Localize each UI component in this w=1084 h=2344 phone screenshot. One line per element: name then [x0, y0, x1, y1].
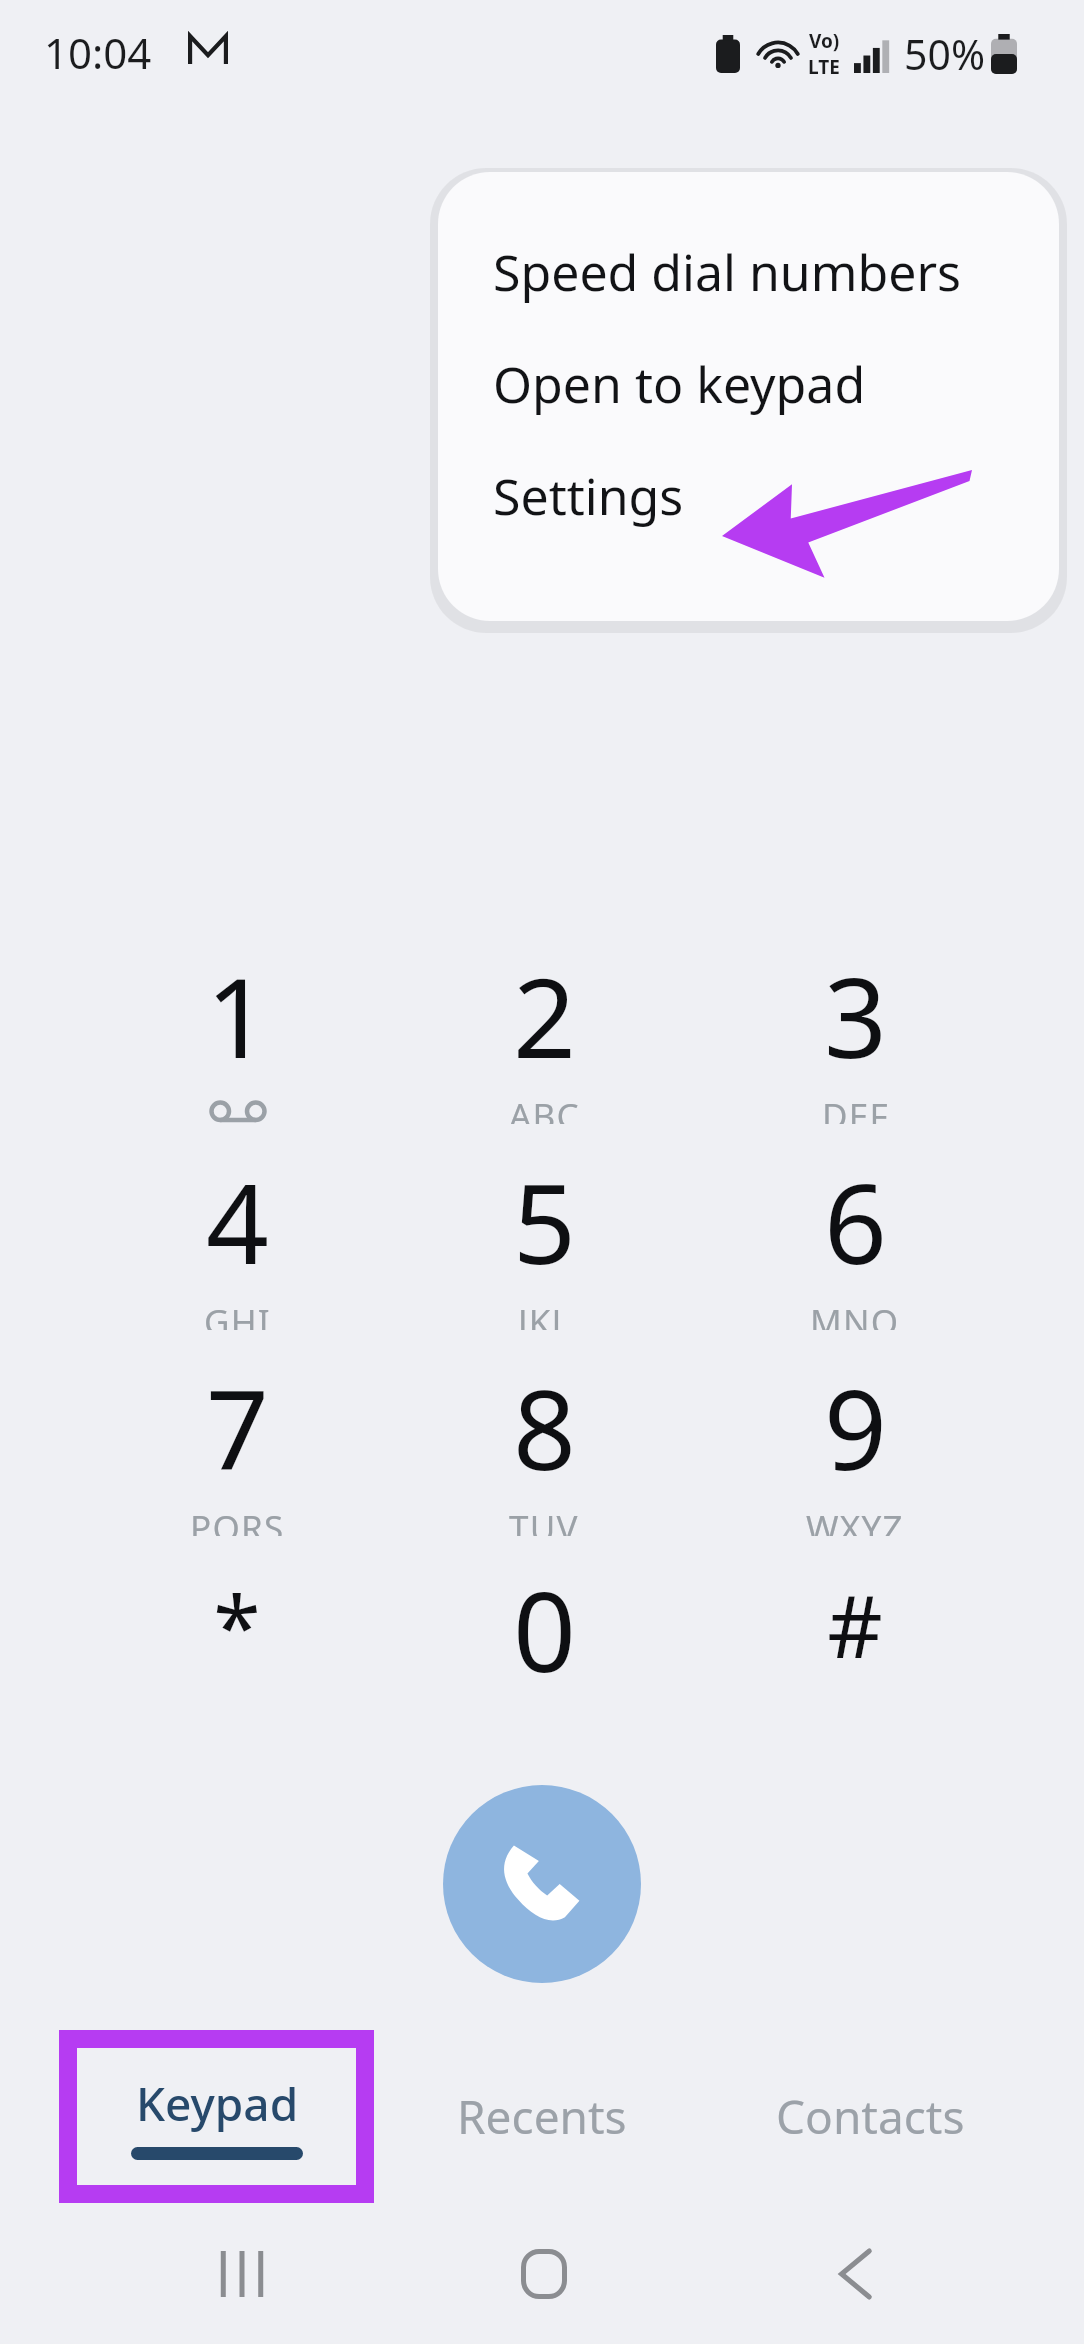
staticText: 9	[824, 1352, 887, 1502]
button[interactable]: 0	[394, 1548, 694, 1738]
staticText: Open to keypad	[493, 350, 866, 418]
staticText: 7	[206, 1352, 269, 1502]
button[interactable]: Speed dial numbers	[438, 216, 1059, 328]
staticText: Recents	[457, 2085, 627, 2148]
button[interactable]: Open to keypad	[438, 328, 1059, 440]
staticText: MNO	[810, 1298, 900, 1330]
staticText: 3	[824, 940, 887, 1090]
button[interactable]: Recents	[182, 2226, 302, 2322]
button[interactable]: Keypad	[67, 2046, 367, 2186]
staticText: ABC	[509, 1092, 580, 1124]
button[interactable]: Call	[443, 1785, 641, 1983]
button[interactable]: 8	[394, 1346, 694, 1536]
button[interactable]: *	[87, 1548, 387, 1738]
staticText: 1	[206, 940, 269, 1090]
button[interactable]: 6	[705, 1140, 1005, 1330]
button[interactable]: 1	[87, 934, 387, 1124]
staticText: 5	[513, 1146, 576, 1296]
staticText: JKL	[518, 1298, 572, 1330]
staticText: 6	[824, 1146, 887, 1296]
button[interactable]: Home	[489, 2226, 599, 2322]
button[interactable]: 5	[394, 1140, 694, 1330]
button[interactable]: Recents	[392, 2046, 692, 2186]
button[interactable]: 7	[87, 1346, 387, 1536]
staticText: 2	[513, 940, 576, 1090]
staticText: 10:04	[44, 24, 152, 81]
staticText: GHI	[204, 1298, 271, 1330]
button[interactable]: Settings	[438, 440, 1059, 552]
staticText: WXYZ	[806, 1504, 904, 1536]
staticText: #	[827, 1566, 883, 1683]
staticText: PQRS	[190, 1504, 285, 1536]
staticText: 0	[513, 1554, 576, 1704]
staticText: LTE	[808, 54, 840, 80]
staticText: Contacts	[776, 2085, 965, 2148]
button[interactable]: Back	[801, 2226, 911, 2322]
button[interactable]: #	[705, 1548, 1005, 1738]
staticText: TUV	[509, 1504, 579, 1536]
staticText: Settings	[493, 462, 684, 530]
button[interactable]: Contacts	[720, 2046, 1020, 2186]
staticText: 50%	[904, 26, 985, 82]
staticText: Vo)	[809, 28, 840, 54]
staticText: DEF	[822, 1092, 889, 1124]
button[interactable]: 2	[394, 934, 694, 1124]
button[interactable]: 4	[87, 1140, 387, 1330]
staticText: *	[213, 1566, 261, 1683]
staticText: 8	[513, 1352, 576, 1502]
staticText: Speed dial numbers	[493, 238, 962, 306]
button[interactable]: 3	[705, 934, 1005, 1124]
staticText: Keypad	[136, 2072, 299, 2135]
button[interactable]: 9	[705, 1346, 1005, 1536]
staticText: 4	[206, 1146, 269, 1296]
